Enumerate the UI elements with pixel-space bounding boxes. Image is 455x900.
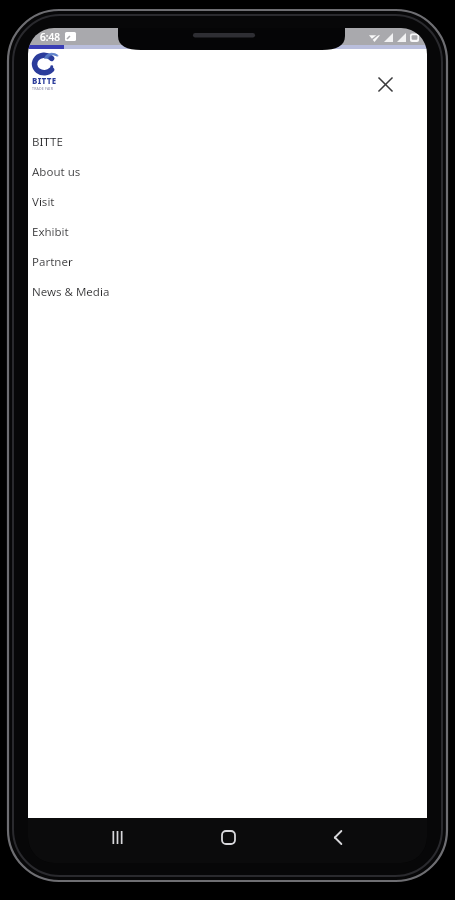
button[interactable]: Home (206, 818, 250, 857)
staticText: Partner (32, 254, 73, 270)
button[interactable]: Close menu (367, 66, 403, 102)
button[interactable]: BITTE (28, 127, 427, 157)
staticText: About us (32, 164, 81, 180)
staticText: Visit (32, 194, 55, 210)
button[interactable]: Exhibit (28, 217, 427, 247)
staticText: News & Media (32, 284, 110, 300)
button[interactable]: Partner (28, 247, 427, 277)
staticText: BITTE (32, 75, 57, 86)
button[interactable]: Visit (28, 187, 427, 217)
button[interactable]: About us (28, 157, 427, 187)
button[interactable]: News & Media (28, 277, 427, 307)
button[interactable]: Recent apps (95, 818, 139, 857)
staticText: BITTE (32, 134, 63, 150)
button[interactable]: Back (316, 818, 360, 857)
staticText: 6:48 (40, 30, 60, 44)
button[interactable]: BITTE logo (32, 53, 74, 91)
staticText: Exhibit (32, 224, 69, 240)
staticText: TRADE FAIR (32, 86, 54, 91)
